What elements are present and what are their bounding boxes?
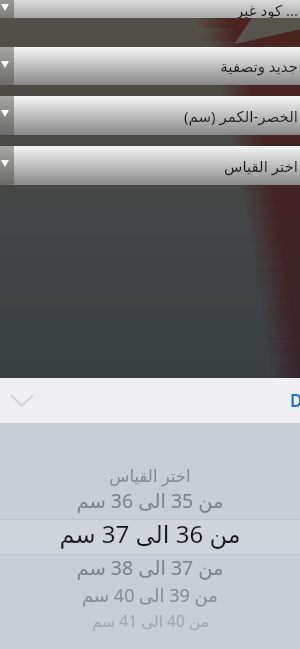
staticText: من 37 الى 38 سم [76, 554, 224, 580]
button[interactable]: من 36 الى 37 سم [0, 517, 300, 549]
button[interactable]: كود غير ... [0, 0, 300, 18]
button[interactable]: Collapse [0, 378, 44, 423]
staticText: من 35 الى 36 سم [76, 487, 224, 513]
button[interactable]: اختر القياس [0, 462, 300, 488]
button[interactable]: جديد وتصفية [0, 47, 300, 85]
staticText: الخصر-الكمر (سم) [184, 106, 298, 126]
staticText: اختر القياس [109, 464, 191, 486]
button[interactable]: اختر القياس [0, 146, 300, 185]
staticText: Done [290, 389, 300, 412]
button[interactable]: من 35 الى 36 سم [0, 487, 300, 513]
staticText: من 36 الى 37 سم [59, 517, 241, 549]
staticText: اختر القياس [224, 156, 298, 176]
button[interactable]: Done [290, 378, 300, 423]
button[interactable]: من 40 الى 41 سم [0, 609, 300, 631]
staticText: كود غير ... [235, 0, 298, 18]
button[interactable]: من 39 الى 40 سم [0, 582, 300, 608]
button[interactable]: الخصر-الكمر (سم) [0, 96, 300, 135]
staticText: من 40 الى 41 سم [92, 610, 209, 631]
button[interactable]: من 37 الى 38 سم [0, 554, 300, 580]
staticText: جديد وتصفية [220, 56, 298, 76]
staticText: من 39 الى 40 سم [82, 583, 218, 608]
